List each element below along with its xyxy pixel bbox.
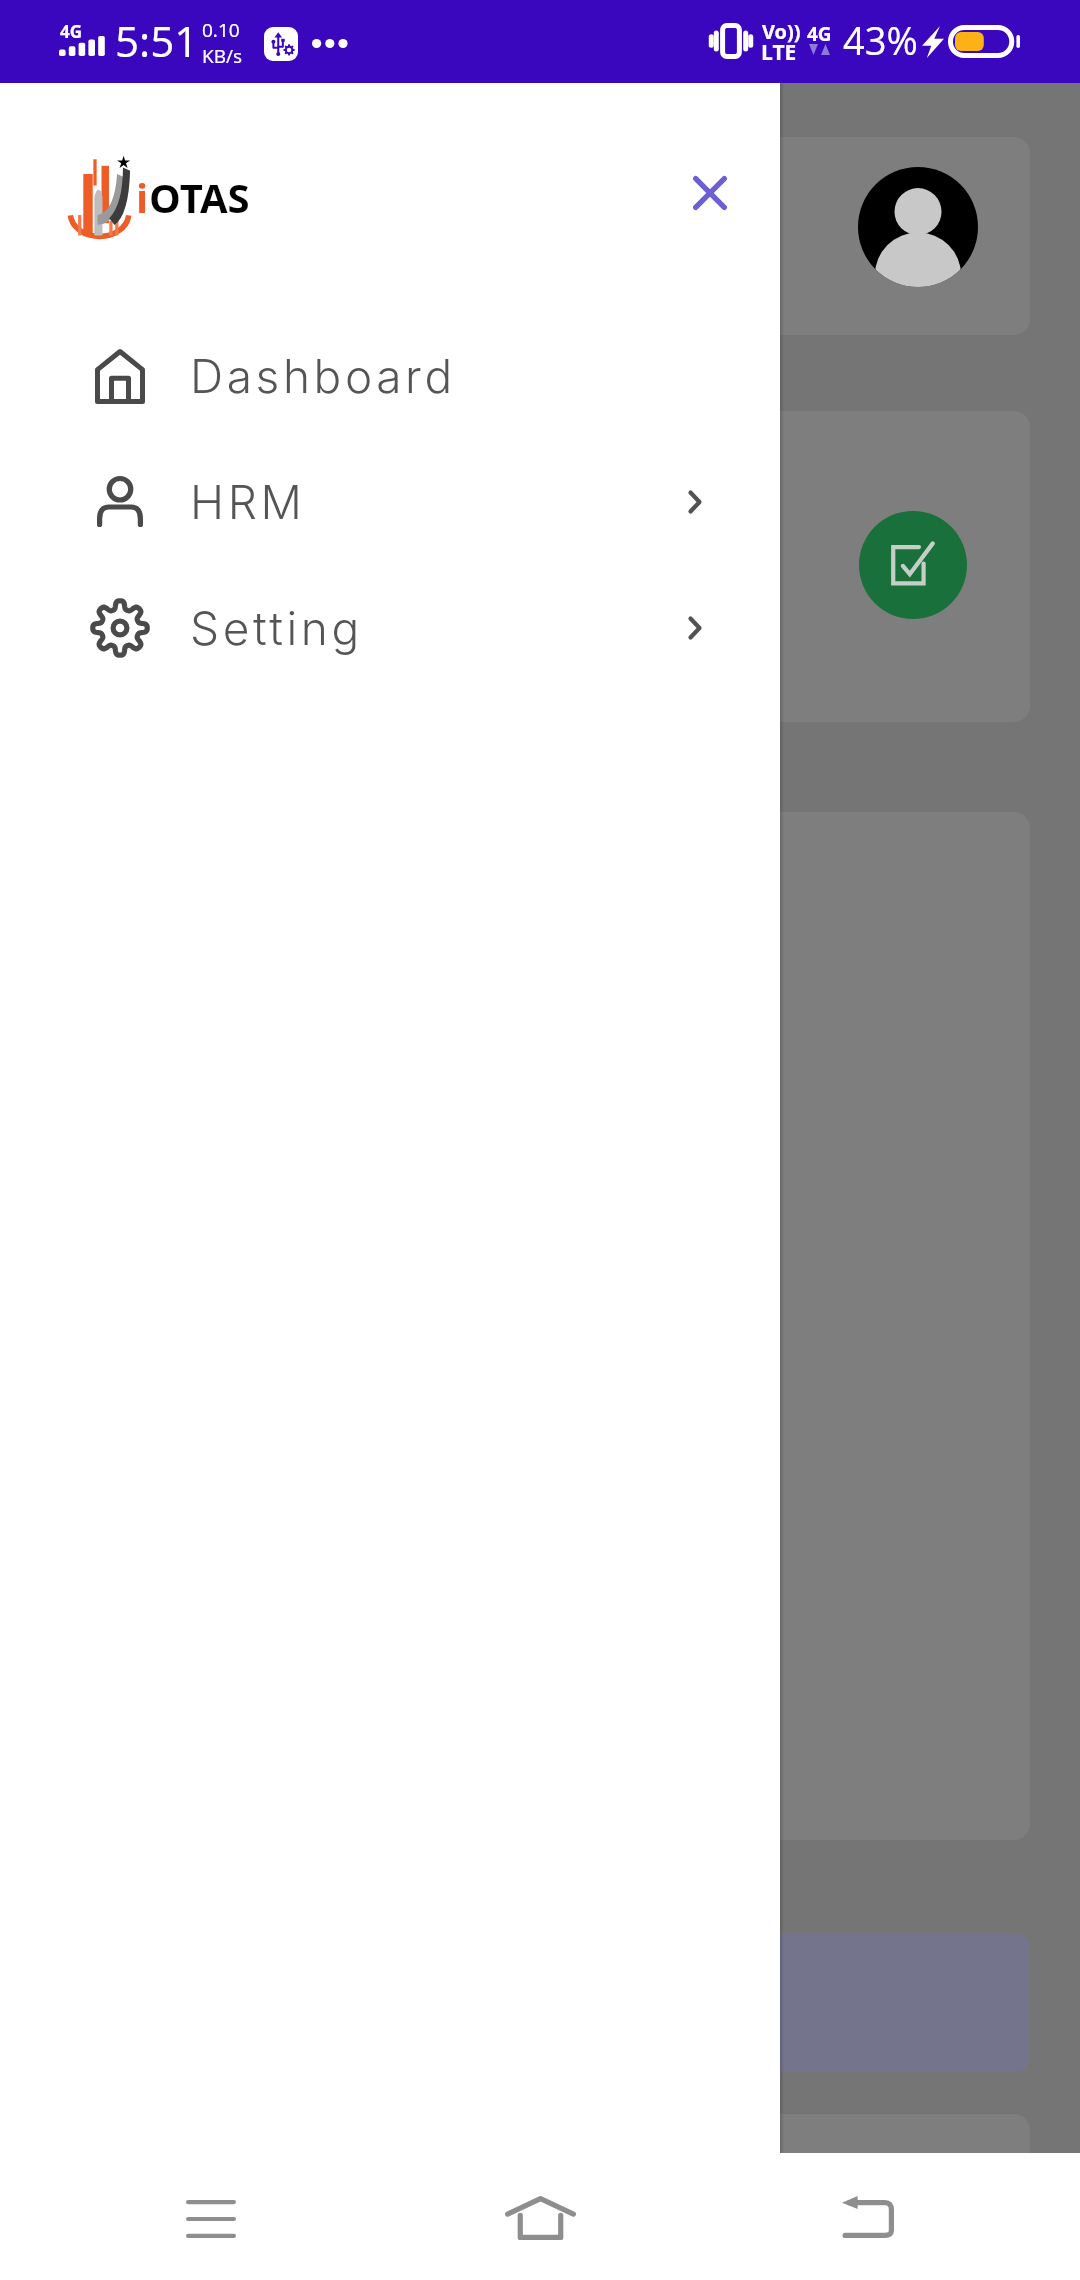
button[interactable]: Dashboard — [0, 313, 780, 439]
staticText: HRM — [190, 474, 306, 530]
staticText: i — [136, 170, 149, 224]
button[interactable]: Recent apps — [131, 2153, 291, 2280]
staticText: KB/s — [202, 43, 243, 69]
staticText: 0.10 — [202, 17, 240, 43]
staticText: LTE — [761, 38, 797, 67]
button[interactable]: Home — [460, 2153, 620, 2280]
button[interactable]: Back — [788, 2153, 948, 2280]
button[interactable]: Close navigation drawer — [661, 144, 758, 241]
staticText: Setting — [190, 600, 363, 656]
staticText: 5:51 — [115, 12, 199, 69]
button[interactable]: Check in — [859, 511, 967, 619]
staticText: Dashboard — [190, 348, 456, 404]
button[interactable]: Setting — [0, 565, 780, 691]
staticText: OTAS — [149, 170, 250, 224]
staticText: 43% — [843, 14, 918, 66]
staticText: Vo)) — [762, 18, 801, 45]
button[interactable]: Profile photo — [858, 167, 978, 287]
button[interactable]: HRM — [0, 439, 780, 565]
staticText: 4G — [60, 20, 83, 43]
staticText: 4G — [807, 21, 832, 47]
